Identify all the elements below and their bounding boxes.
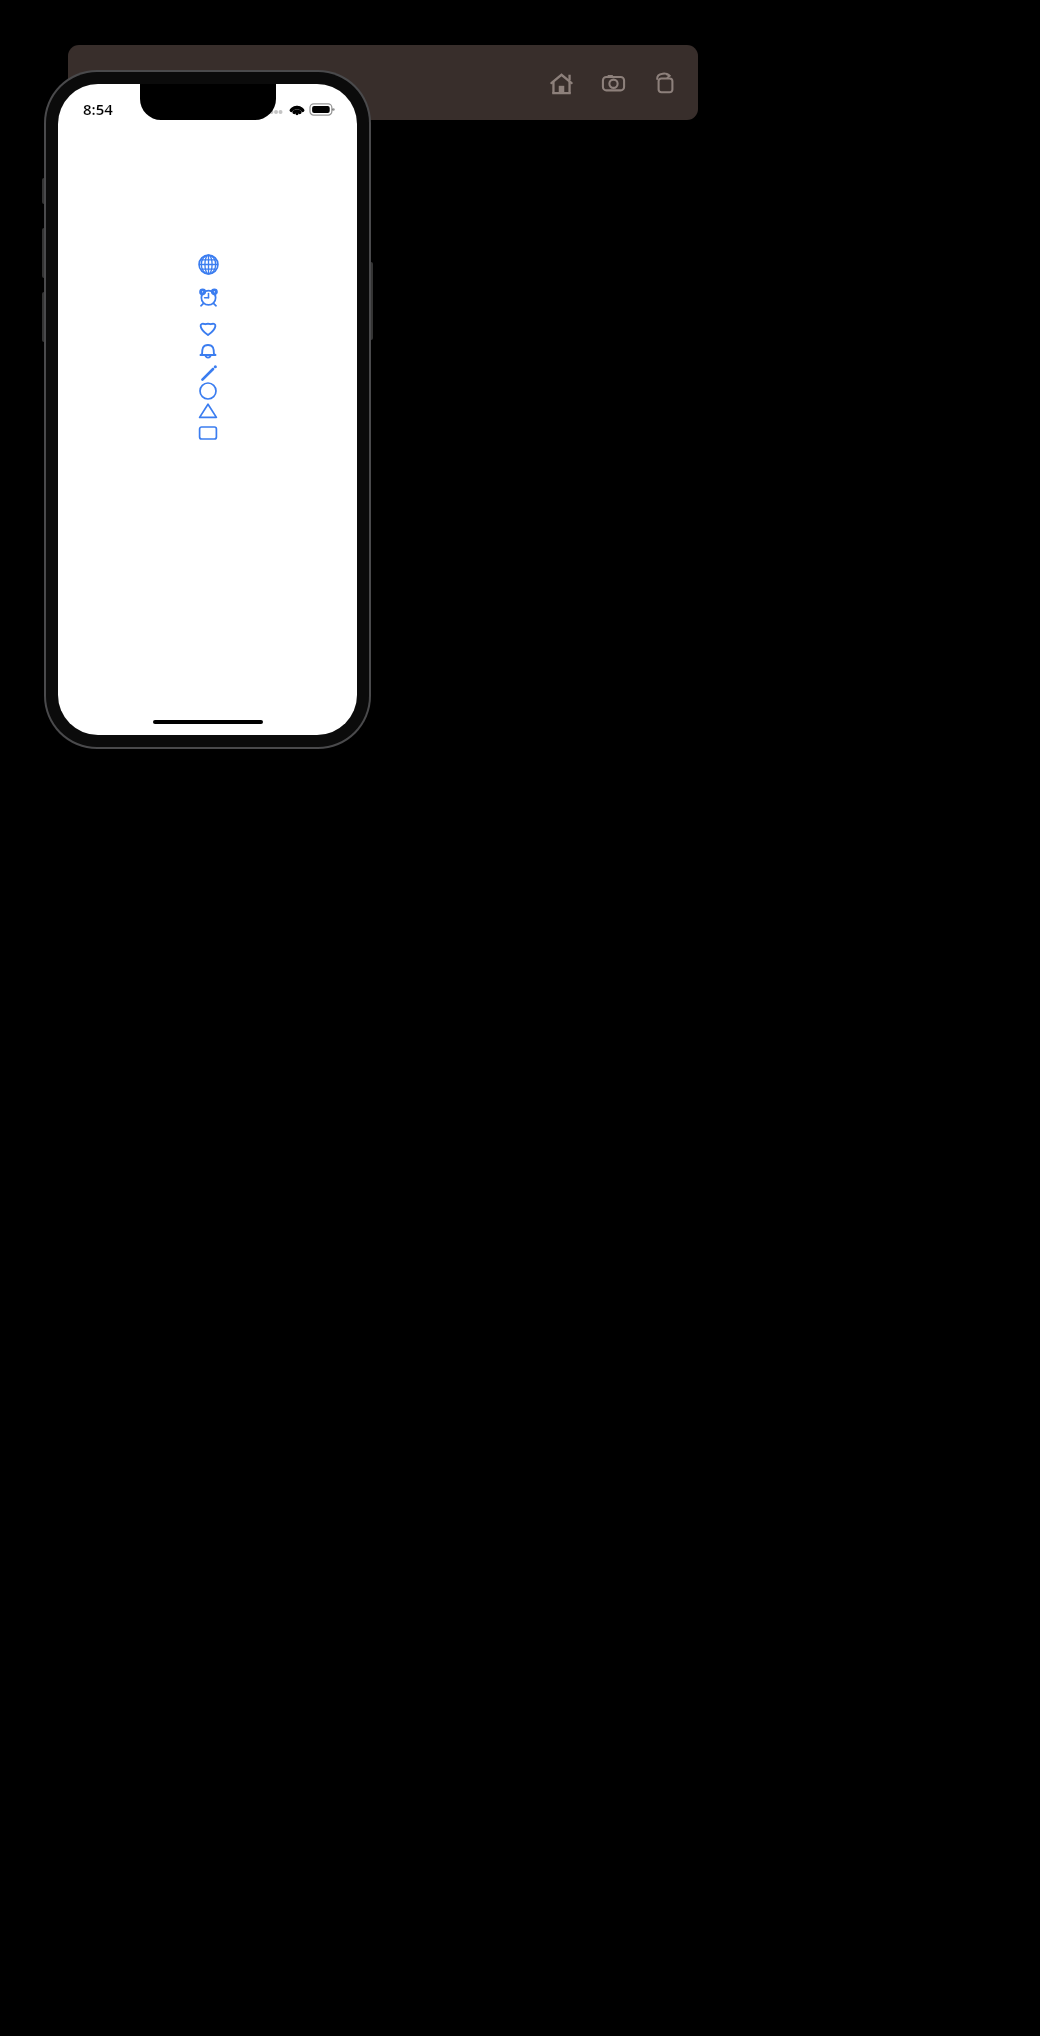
staticText: 8:54: [83, 99, 113, 119]
staticText: iPhone 14: [188, 65, 261, 85]
button[interactable]: Window button 2: [140, 75, 155, 90]
button[interactable]: Globe: [196, 252, 220, 276]
button[interactable]: Rectangle: [196, 421, 220, 445]
button[interactable]: Window button 1: [114, 75, 129, 90]
button[interactable]: Window button 0: [88, 75, 103, 90]
button[interactable]: Triangle: [196, 399, 220, 423]
button[interactable]: Screenshot: [598, 68, 628, 98]
button[interactable]: Notifications: [196, 339, 220, 363]
button[interactable]: Edit: [196, 361, 220, 385]
button[interactable]: Favorite: [196, 317, 220, 341]
button[interactable]: Home: [546, 68, 576, 98]
button[interactable]: Rotate: [650, 68, 680, 98]
button[interactable]: Alarm clock: [196, 284, 220, 308]
button[interactable]: Circle: [196, 379, 220, 403]
